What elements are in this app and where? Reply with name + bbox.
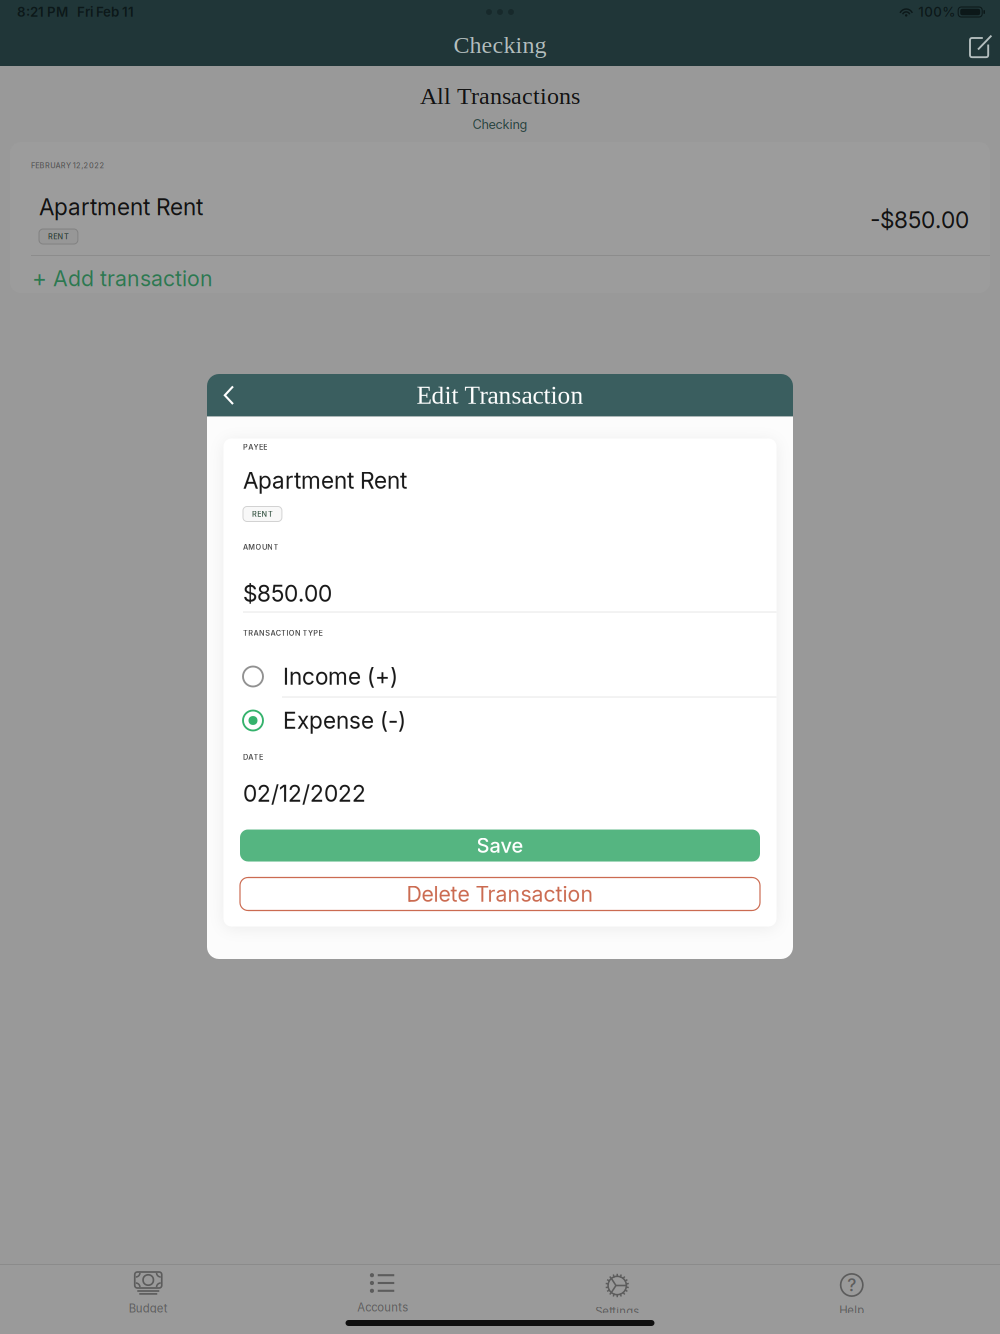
staticText: M (248, 543, 255, 551)
staticText: A (270, 629, 275, 637)
button[interactable]: Expense (-) (223, 697, 776, 736)
staticText: A (55, 161, 60, 170)
staticText: E (259, 753, 263, 761)
staticText: Expense (-) (283, 707, 406, 734)
staticText: R (248, 629, 253, 637)
button[interactable]: ? (734, 1265, 969, 1313)
staticText: 02/12/2022 (243, 780, 366, 807)
staticText: Edit Transaction (416, 381, 583, 409)
staticText: I (286, 629, 288, 637)
button[interactable]: Delete Transaction (240, 877, 760, 910)
staticText: Checking (472, 117, 527, 132)
staticText: C (276, 629, 281, 637)
staticText: T (64, 232, 69, 241)
staticText: 100% (918, 4, 955, 20)
staticText: 2 (94, 161, 99, 170)
staticText: 2 (76, 161, 81, 170)
staticText: E (263, 443, 267, 451)
staticText: 8:21 PM (17, 4, 68, 20)
staticText: 2 (99, 161, 104, 170)
button[interactable]: Back (207, 374, 249, 416)
staticText: T (303, 629, 308, 637)
staticText: $850.00 (243, 580, 332, 607)
staticText: P (313, 629, 318, 637)
staticText: A (243, 543, 248, 551)
staticText: N (259, 629, 265, 637)
staticText: 1 (73, 161, 76, 170)
button[interactable]: Budget (31, 1265, 265, 1313)
staticText: Income (+) (283, 663, 398, 690)
staticText: E (318, 629, 322, 637)
staticText: E (257, 510, 261, 518)
staticText: R (48, 232, 53, 241)
staticText: T (273, 543, 278, 551)
staticText: N (262, 510, 268, 518)
button[interactable]: Compose (955, 25, 1000, 65)
staticText: Help (839, 1304, 864, 1317)
staticText: D (243, 753, 248, 761)
staticText: Apartment Rent (39, 193, 203, 221)
staticText: Y (254, 443, 259, 451)
staticText: O (289, 629, 295, 637)
staticText: R (45, 161, 50, 170)
staticText: All Transactions (420, 83, 580, 109)
staticText: R (61, 161, 66, 170)
button[interactable]: + (10, 256, 990, 293)
staticText: + (32, 265, 47, 292)
staticText: U (50, 161, 55, 170)
staticText: 2 (84, 161, 89, 170)
staticText: E (35, 161, 39, 170)
staticText: E (53, 232, 57, 241)
staticText: Delete Transaction (406, 881, 593, 907)
staticText: A (248, 753, 253, 761)
staticText: F (31, 161, 35, 170)
staticText: R (252, 510, 257, 518)
staticText: Apartment Rent (243, 467, 407, 494)
staticText: A (254, 629, 259, 637)
staticText: 0 (89, 161, 94, 170)
staticText: Fri Feb 11 (77, 4, 134, 20)
staticText: T (243, 629, 248, 637)
staticText: Accounts (357, 1301, 408, 1314)
staticText: T (281, 629, 286, 637)
button[interactable]: Save (240, 829, 760, 861)
staticText: T (254, 753, 259, 761)
staticText: ? (847, 1274, 856, 1295)
staticText: Checking (453, 32, 546, 58)
staticText: U (262, 543, 267, 551)
button[interactable]: Income (+) (223, 637, 776, 697)
staticText: N (267, 543, 273, 551)
staticText: Budget (129, 1302, 168, 1315)
button[interactable]: Accounts (265, 1265, 500, 1313)
staticText: T (268, 510, 273, 518)
staticText: -$850.00 (870, 206, 969, 234)
staticText: A (248, 443, 253, 451)
staticText: S (265, 629, 270, 637)
staticText: B (40, 161, 45, 170)
staticText: N (58, 232, 64, 241)
staticText: P (243, 443, 248, 451)
staticText: E (259, 443, 263, 451)
staticText: N (295, 629, 301, 637)
staticText: Save (476, 833, 523, 858)
staticText: O (256, 543, 262, 551)
staticText: Settings (595, 1305, 639, 1318)
staticText: , (81, 161, 83, 170)
staticText: Y (66, 161, 71, 170)
staticText: Y (308, 629, 313, 637)
button[interactable]: Settings (500, 1265, 734, 1313)
button[interactable]: Apartment Rent (10, 171, 990, 255)
staticText: Add transaction (53, 266, 213, 291)
